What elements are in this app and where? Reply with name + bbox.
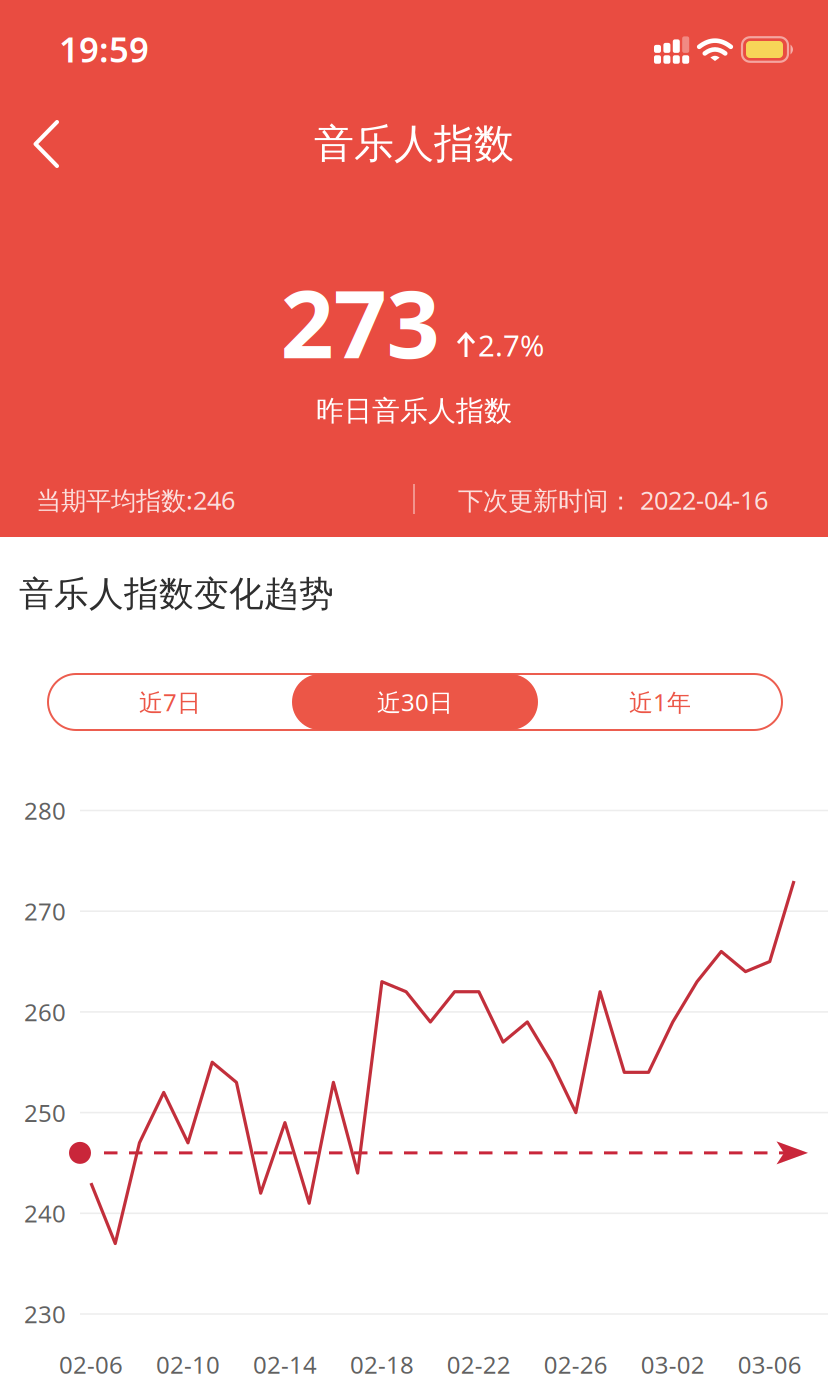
staticText: 02-18 [350,1349,414,1380]
staticText: 昨日音乐人指数 [316,394,512,428]
staticText: 2.7% [478,325,544,364]
staticText: 273 [280,260,439,384]
staticText: 近1年 [629,686,691,718]
staticText: 250 [24,1097,66,1129]
button[interactable]: 近7日 [48,674,292,730]
button[interactable]: 近30日 [292,674,538,730]
staticText: 当期平均指数:246 [36,483,235,517]
staticText: 270 [24,895,66,927]
staticText: 260 [24,996,66,1028]
staticText: 19:59 [59,26,149,72]
staticText: 03-02 [641,1349,705,1380]
staticText: 音乐人指数 [314,119,514,168]
staticText: 02-22 [447,1349,511,1380]
staticText: 下次更新时间： 2022-04-16 [458,483,768,517]
button[interactable]: 近1年 [538,674,782,730]
staticText: 近7日 [139,686,201,718]
staticText: 02-14 [253,1349,317,1380]
staticText: 02-06 [59,1349,123,1380]
staticText: 02-26 [544,1349,608,1380]
staticText: 近30日 [377,686,453,718]
button[interactable]: Back [14,112,78,176]
staticText: 03-06 [738,1349,802,1380]
staticText: 音乐人指数变化趋势 [19,573,334,615]
staticText: 280 [24,795,66,826]
staticText: 240 [24,1197,66,1229]
staticText: 230 [24,1298,66,1330]
staticText: 02-10 [156,1349,220,1380]
